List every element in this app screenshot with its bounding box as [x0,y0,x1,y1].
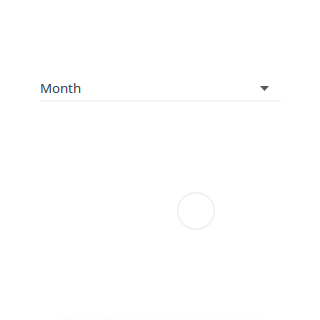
staticText: Month [40,79,81,97]
button[interactable]: Month [40,70,281,104]
